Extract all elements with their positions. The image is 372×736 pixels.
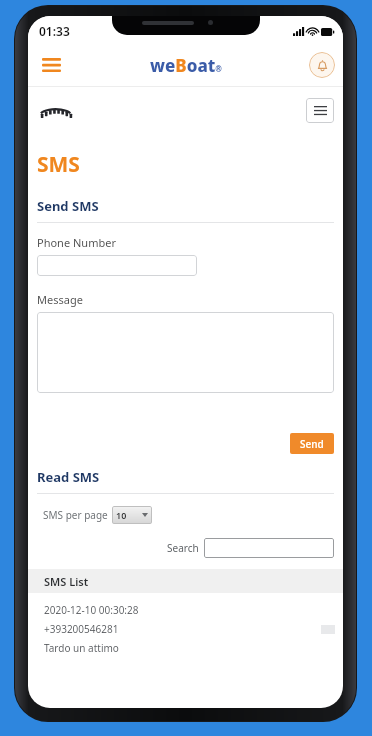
button[interactable]: 2020-12-10 00:30:28: [28, 593, 343, 665]
button[interactable]: Section menu: [306, 98, 334, 123]
button[interactable]: Message input: [37, 312, 334, 393]
button[interactable]: Open navigation menu: [34, 48, 68, 82]
staticText: +393200546281: [44, 622, 119, 636]
button[interactable]: Search SMS: [204, 538, 334, 558]
staticText: SMS: [37, 150, 80, 179]
staticText: 10: [116, 509, 127, 521]
button[interactable]: SMS per page selector: [112, 506, 152, 524]
button[interactable]: Phone Number input: [37, 255, 197, 276]
staticText: Search: [167, 541, 199, 555]
button[interactable]: Notifications: [309, 52, 335, 78]
staticText: Message: [37, 292, 83, 307]
staticText: 01:33: [39, 23, 70, 39]
staticText: SMS per page: [43, 508, 108, 522]
button[interactable]: weBoat®: [150, 54, 222, 77]
button[interactable]: Send: [290, 433, 334, 454]
staticText: weBoat®: [150, 54, 222, 77]
staticText: Read SMS: [37, 468, 100, 486]
staticText: Send SMS: [37, 197, 99, 215]
staticText: Phone Number: [37, 235, 116, 250]
button[interactable]: Brand logo: [36, 100, 76, 122]
staticText: Tardo un attimo: [44, 641, 119, 655]
button[interactable]: SMS List: [28, 569, 343, 593]
staticText: SMS List: [44, 574, 89, 589]
staticText: 2020-12-10 00:30:28: [44, 603, 139, 617]
staticText: Send: [300, 437, 324, 451]
